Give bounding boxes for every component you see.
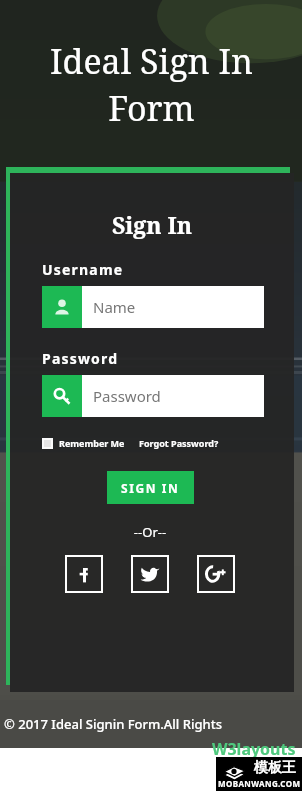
button[interactable]: Forgot Password? — [139, 437, 219, 449]
staticText: Remember Me — [59, 437, 125, 449]
staticText: Name — [93, 297, 136, 317]
staticText: --Or-- — [8, 523, 292, 541]
staticText: Password — [93, 386, 161, 406]
button[interactable]: Mobanwang logo — [216, 757, 302, 791]
staticText: © 2017 Ideal Signin Form.All Rights — [4, 715, 222, 733]
staticText: Ideal Sign In Form — [50, 38, 253, 131]
button[interactable]: Google Plus — [197, 555, 235, 593]
staticText: 模板王 — [254, 759, 296, 777]
staticText: Forgot Password? — [139, 437, 219, 449]
button[interactable]: Facebook — [65, 555, 103, 593]
button[interactable]: Twitter — [131, 555, 169, 593]
button[interactable]: SIGN IN — [107, 471, 194, 504]
staticText: Password — [42, 349, 119, 368]
staticText: W3layouts — [212, 738, 296, 760]
button[interactable]: Name — [42, 286, 264, 328]
staticText: MOBANWANG.COM — [218, 778, 301, 789]
button[interactable]: Password — [42, 375, 264, 417]
staticText: Username — [42, 260, 124, 279]
button[interactable]: Remember Me — [42, 437, 125, 449]
staticText: SIGN IN — [121, 480, 180, 496]
staticText: Sign In — [10, 209, 294, 240]
